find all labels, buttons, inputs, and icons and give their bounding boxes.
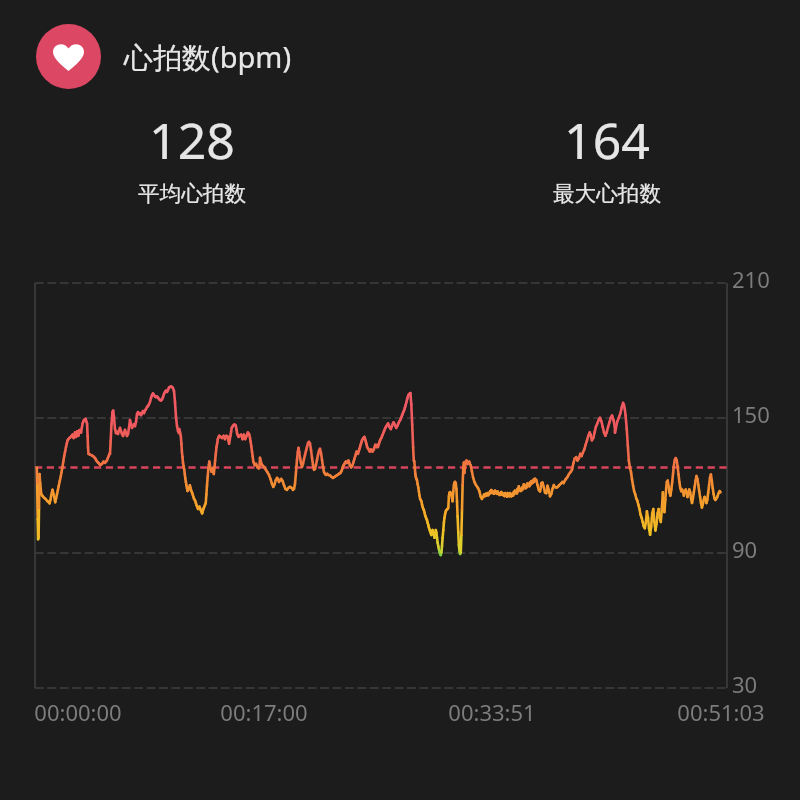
button[interactable]: Heart rate bbox=[36, 24, 326, 89]
staticText: 00:33:51 bbox=[392, 697, 592, 727]
staticText: 00:00:00 bbox=[0, 697, 178, 727]
staticText: 90 bbox=[732, 534, 758, 564]
staticText: 150 bbox=[732, 399, 770, 429]
button[interactable]: 128 bbox=[42, 106, 342, 201]
staticText: 128 bbox=[149, 106, 235, 174]
staticText: 00:17:00 bbox=[164, 697, 364, 727]
staticText: 164 bbox=[564, 106, 650, 174]
staticText: 30 bbox=[732, 669, 758, 699]
staticText: 最大心拍数 bbox=[553, 180, 661, 207]
button[interactable]: 164 bbox=[457, 106, 757, 201]
staticText: 心拍数(bpm) bbox=[124, 37, 292, 77]
staticText: 平均心拍数 bbox=[138, 180, 246, 207]
staticText: 210 bbox=[732, 264, 770, 294]
button[interactable]: Heart rate bbox=[36, 24, 101, 89]
staticText: 00:51:03 bbox=[621, 697, 800, 727]
